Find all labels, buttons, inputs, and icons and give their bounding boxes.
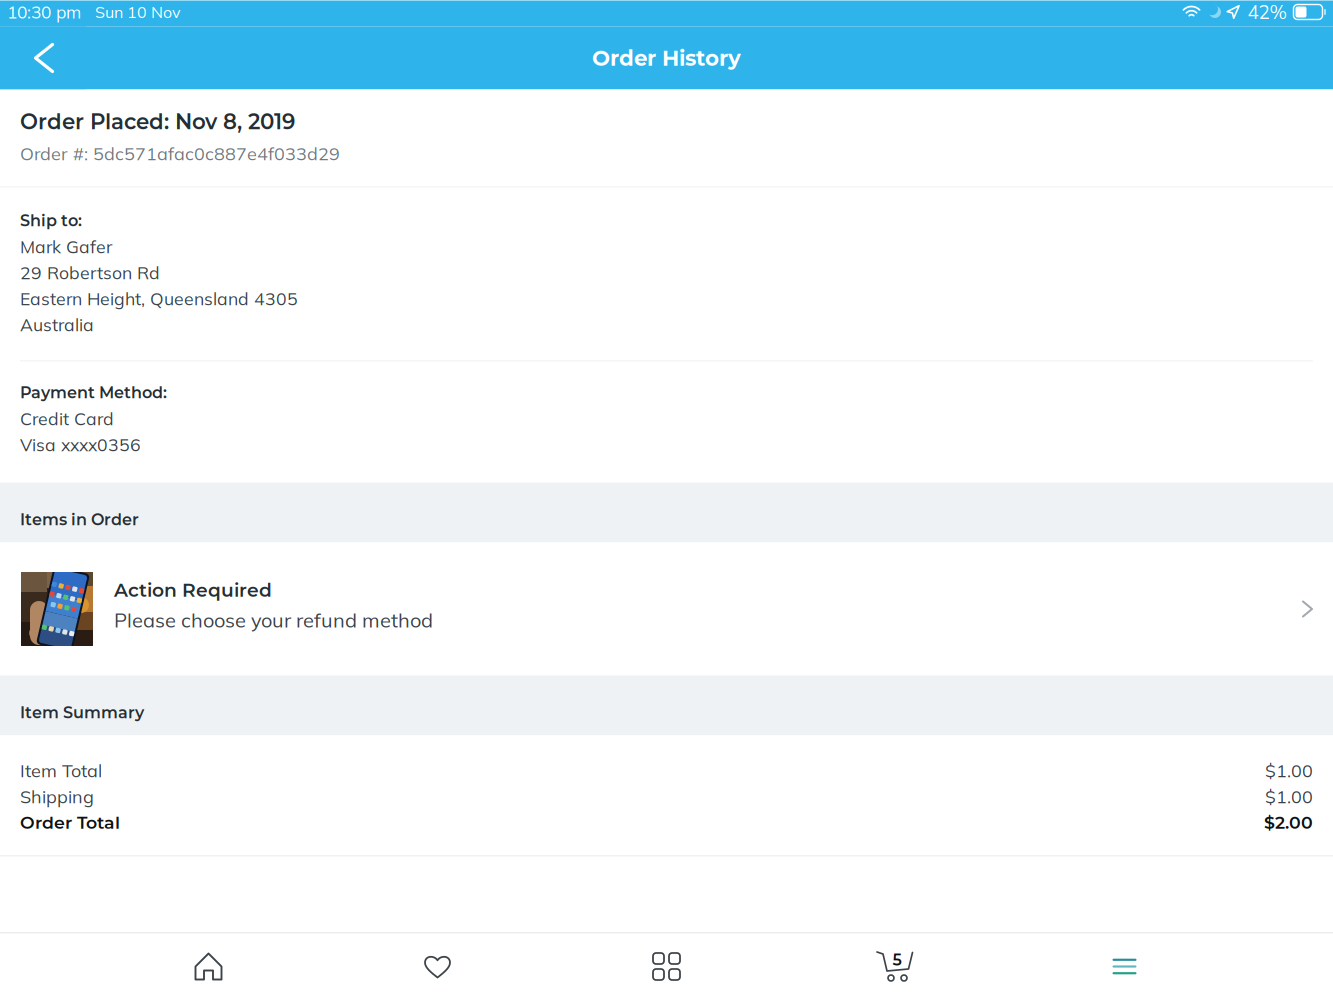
staticText: Action Required — [114, 579, 272, 601]
staticText: Item Total — [20, 759, 102, 782]
staticText: Credit Card — [20, 407, 114, 430]
staticText: $2.00 — [1264, 812, 1313, 833]
staticText: Order Placed: Nov 8, 2019 — [20, 108, 295, 134]
button[interactable]: Cart, 5 items — [781, 933, 1010, 999]
staticText: 10:30 pm — [7, 1, 81, 23]
button[interactable]: Categories — [552, 933, 781, 999]
staticText: Order Total — [20, 812, 120, 833]
staticText: Sun 10 Nov — [95, 2, 180, 22]
staticText: Payment Method: — [20, 383, 167, 402]
staticText: Eastern Height, Queensland 4305 — [20, 287, 298, 310]
staticText: 42% — [1247, 0, 1286, 24]
staticText: $1.00 — [1265, 759, 1313, 782]
button[interactable]: Favourites — [323, 933, 552, 999]
button[interactable]: Action Required — [0, 542, 1333, 675]
button[interactable]: Home — [94, 933, 323, 999]
staticText: $1.00 — [1265, 785, 1313, 808]
staticText: Shipping — [20, 785, 94, 808]
staticText: Ship to: — [20, 211, 82, 230]
staticText: 29 Robertson Rd — [20, 261, 160, 284]
staticText: Item Summary — [20, 703, 144, 722]
staticText: Please choose your refund method — [114, 607, 433, 633]
staticText: Mark Gafer — [20, 235, 112, 258]
button[interactable]: Back — [0, 26, 86, 89]
staticText: Order History — [592, 45, 741, 71]
staticText: 5 — [892, 950, 901, 969]
staticText: Items in Order — [20, 510, 139, 529]
button[interactable]: Menu — [1010, 933, 1239, 999]
staticText: Australia — [20, 313, 94, 336]
staticText: Visa xxxx0356 — [20, 433, 141, 456]
staticText: Order #: 5dc571afac0c887e4f033d29 — [20, 142, 340, 165]
